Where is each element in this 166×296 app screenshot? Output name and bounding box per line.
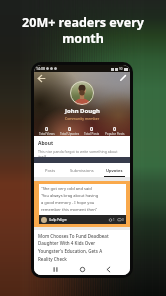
staticText: Galip Peligre bbox=[49, 218, 67, 222]
button[interactable]: Home bbox=[77, 264, 88, 275]
staticText: Total Views bbox=[39, 132, 55, 136]
button[interactable]: 0 bbox=[105, 125, 125, 136]
staticText: Total Posts bbox=[84, 132, 100, 136]
staticText: Community member bbox=[65, 116, 100, 121]
staticText: 0 bbox=[68, 125, 72, 132]
staticText: Total Upvotes bbox=[60, 132, 80, 136]
button[interactable]: Posts bbox=[34, 163, 66, 177]
staticText: Upvotes bbox=[106, 168, 123, 173]
button[interactable]: Mom Chooses To Fund Deadbeat Daughter Wi… bbox=[38, 233, 126, 262]
button[interactable]: 0 bbox=[60, 125, 80, 136]
staticText: This nice panda forgot to write somethin… bbox=[38, 149, 126, 157]
staticText: 0 bbox=[113, 125, 117, 132]
staticText: John Dough bbox=[65, 107, 100, 115]
staticText: 14:08 bbox=[36, 66, 45, 71]
staticText: 0 bbox=[122, 218, 124, 222]
staticText: "She got very cold and said 'You always … bbox=[41, 186, 99, 212]
button[interactable]: Edit profile bbox=[118, 73, 128, 83]
staticText: 0 bbox=[90, 125, 94, 132]
staticText: Mom Chooses To Fund Deadbeat Daughter Wi… bbox=[38, 233, 109, 262]
staticText: 90 bbox=[119, 67, 123, 71]
button[interactable]: "She got very cold and said 'You always … bbox=[39, 184, 126, 224]
staticText: About bbox=[38, 140, 54, 147]
button[interactable]: Back bbox=[103, 264, 114, 275]
button[interactable]: Back bbox=[36, 73, 47, 84]
button[interactable]: Upvotes bbox=[98, 163, 130, 177]
staticText: Popular Posts bbox=[105, 132, 125, 136]
staticText: 1 bbox=[113, 218, 115, 222]
staticText: 0 bbox=[45, 125, 49, 132]
button[interactable]: 0 bbox=[39, 125, 55, 136]
staticText: Posts bbox=[45, 168, 56, 173]
button[interactable]: Recents bbox=[50, 264, 61, 275]
button[interactable]: Submissions bbox=[66, 163, 98, 177]
button[interactable]: 0 bbox=[84, 125, 100, 136]
staticText: Submissions bbox=[70, 168, 94, 173]
staticText: 20M+ readers every month bbox=[0, 14, 166, 46]
